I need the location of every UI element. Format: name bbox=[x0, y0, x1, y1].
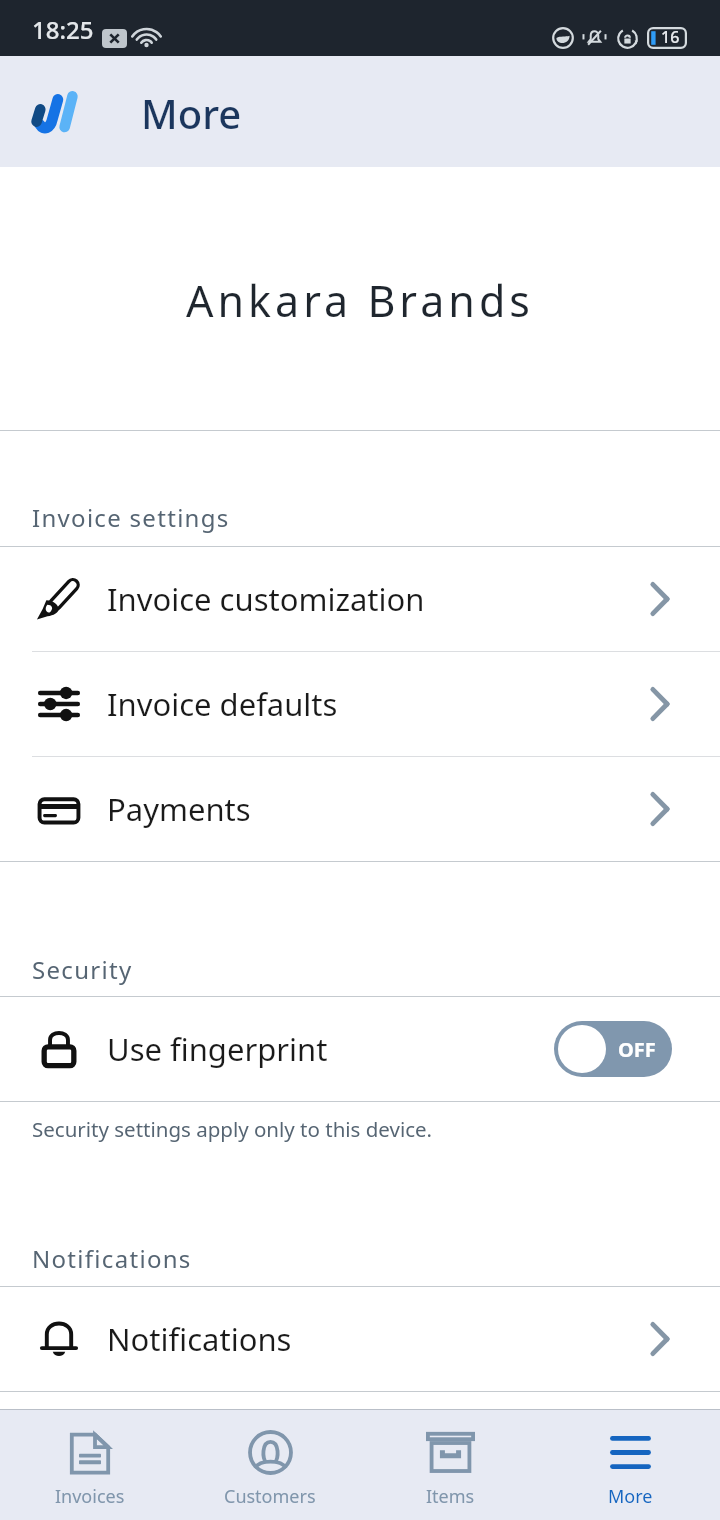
staticText: Invoice defaults bbox=[107, 683, 650, 725]
button[interactable]: Items bbox=[360, 1410, 540, 1520]
button[interactable]: Invoices bbox=[0, 1410, 180, 1520]
button[interactable]: Invoice defaults bbox=[0, 652, 720, 756]
staticText: Customers bbox=[224, 1484, 316, 1509]
staticText: 16 bbox=[661, 26, 680, 48]
staticText: Security settings apply only to this dev… bbox=[32, 1115, 433, 1143]
staticText: Ankara Brands bbox=[0, 271, 720, 330]
staticText: Payments bbox=[107, 788, 650, 830]
staticText: Security bbox=[32, 953, 133, 986]
staticText: OFF bbox=[618, 1036, 656, 1063]
staticText: Items bbox=[426, 1484, 475, 1509]
button[interactable]: Customers bbox=[180, 1410, 360, 1520]
staticText: Notifications bbox=[32, 1242, 192, 1275]
button[interactable]: Payments bbox=[0, 757, 720, 861]
button[interactable]: More bbox=[540, 1410, 720, 1520]
button[interactable]: Toggle fingerprint bbox=[554, 1021, 672, 1077]
staticText: Use fingerprint bbox=[107, 1028, 554, 1070]
button[interactable]: Use fingerprint bbox=[0, 997, 720, 1101]
staticText: Invoice settings bbox=[32, 501, 230, 534]
staticText: 18:25 bbox=[32, 13, 94, 45]
staticText: More bbox=[608, 1484, 653, 1509]
staticText: Notifications bbox=[107, 1318, 650, 1360]
staticText: Invoice customization bbox=[107, 578, 650, 620]
staticText: More bbox=[141, 86, 242, 140]
staticText: Invoices bbox=[55, 1484, 125, 1509]
button[interactable]: Notifications bbox=[0, 1287, 720, 1391]
button[interactable]: Invoice customization bbox=[0, 547, 720, 651]
